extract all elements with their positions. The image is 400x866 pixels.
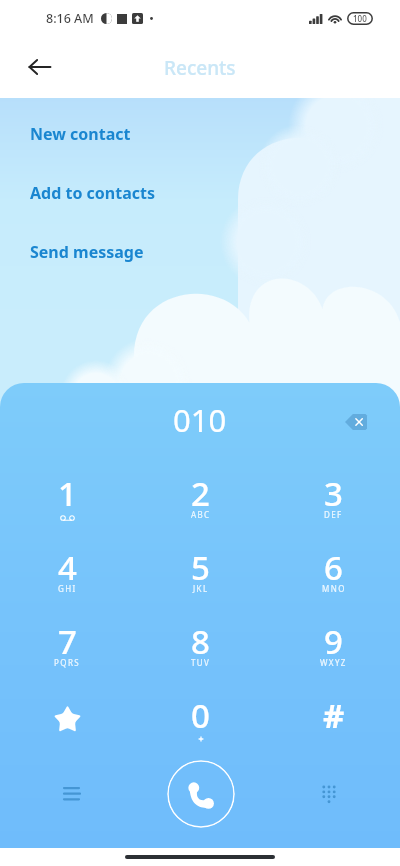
button[interactable]: #	[267, 684, 400, 758]
button[interactable]: Backspace	[335, 403, 375, 443]
button[interactable]: 2	[134, 462, 267, 536]
staticText: 010	[173, 399, 227, 441]
staticText: #	[323, 693, 345, 738]
staticText: 4	[58, 545, 77, 590]
staticText: ABC	[191, 509, 211, 520]
staticText: 7	[58, 619, 77, 664]
staticText: DEF	[324, 509, 343, 520]
staticText: 3	[324, 471, 343, 516]
staticText: 100	[353, 13, 367, 24]
button[interactable]: 6	[267, 536, 400, 610]
button[interactable]: Call log	[43, 770, 91, 818]
staticText: GHI	[58, 583, 77, 594]
staticText: 0	[191, 693, 210, 738]
button[interactable]	[0, 684, 134, 758]
staticText: MNO	[322, 583, 346, 594]
staticText: 9	[324, 619, 343, 664]
staticText: PQRS	[54, 657, 81, 668]
button[interactable]: Call	[167, 760, 235, 828]
button[interactable]: 0	[134, 684, 267, 758]
staticText: 5	[191, 545, 210, 590]
staticText: 2	[191, 471, 210, 516]
staticText: 8	[191, 619, 210, 664]
button[interactable]: 5	[134, 536, 267, 610]
button[interactable]: New contact	[0, 104, 400, 163]
button[interactable]: Dialpad	[310, 770, 358, 818]
button[interactable]: Back	[16, 43, 64, 91]
button[interactable]: 3	[267, 462, 400, 536]
staticText: JKL	[193, 583, 209, 594]
staticText: Send message	[30, 241, 144, 263]
staticText: New contact	[30, 123, 131, 145]
staticText: 8:16 AM	[46, 10, 94, 27]
staticText: TUV	[191, 657, 211, 668]
staticText: 1	[58, 471, 77, 516]
staticText: Recents	[164, 55, 236, 81]
staticText: Add to contacts	[30, 182, 155, 204]
button[interactable]: Add to contacts	[0, 163, 400, 222]
button[interactable]: 7	[0, 610, 134, 684]
button[interactable]: Send message	[0, 222, 400, 281]
button[interactable]: 1	[0, 462, 134, 536]
button[interactable]: 4	[0, 536, 134, 610]
staticText: WXYZ	[320, 657, 347, 668]
button[interactable]: 8	[134, 610, 267, 684]
button[interactable]: 9	[267, 610, 400, 684]
staticText: 6	[324, 545, 343, 590]
